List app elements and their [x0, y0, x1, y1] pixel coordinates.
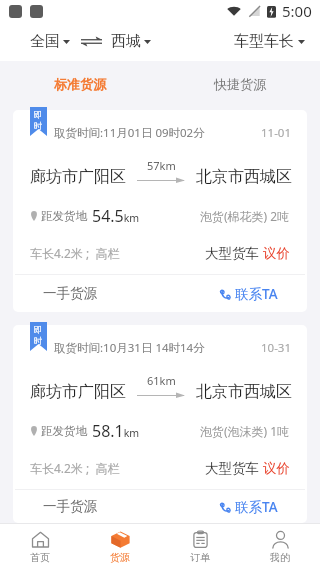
staticText: 联系TA: [235, 498, 278, 516]
staticText: 议价: [263, 460, 290, 477]
staticText: 54.5km: [92, 205, 140, 227]
button[interactable]: 快捷货源: [160, 61, 320, 107]
button[interactable]: 订单: [160, 524, 240, 570]
staticText: 即: [34, 325, 43, 336]
button[interactable]: Swap origin and destination: [81, 36, 102, 47]
staticText: 取货时间:10月31日 14时14分: [54, 340, 205, 356]
staticText: 即: [34, 110, 43, 121]
staticText: 车长4.2米 ; 高栏: [30, 460, 120, 476]
staticText: 时: [34, 121, 43, 132]
staticText: 取货时间:11月01日 09时02分: [54, 125, 205, 141]
staticText: 北京市西城区: [196, 382, 292, 402]
button[interactable]: 我的: [240, 524, 320, 570]
staticText: 西城: [111, 32, 141, 51]
staticText: 距发货地: [41, 424, 87, 438]
staticText: 订单: [190, 551, 210, 564]
staticText: 北京市西城区: [196, 167, 292, 187]
staticText: 议价: [263, 245, 290, 262]
staticText: 11-01: [261, 125, 292, 141]
staticText: 联系TA: [235, 285, 278, 303]
staticText: 我的: [270, 551, 290, 564]
button[interactable]: 货源: [80, 524, 160, 570]
staticText: 廊坊市广阳区: [30, 167, 126, 187]
staticText: 快捷货源: [214, 76, 266, 92]
staticText: 泡货(棉花类) 2吨: [200, 208, 290, 224]
button[interactable]: 联系TA: [220, 498, 278, 516]
staticText: 廊坊市广阳区: [30, 382, 126, 402]
staticText: 车型车长: [234, 32, 294, 51]
staticText: 5:00: [282, 1, 312, 21]
staticText: 大型货车: [205, 459, 263, 477]
button[interactable]: 标准货源: [0, 61, 160, 107]
button[interactable]: 首页: [0, 524, 80, 570]
staticText: 车长4.2米 ; 高栏: [30, 245, 120, 261]
staticText: 一手货源: [43, 498, 97, 515]
staticText: 全国: [30, 32, 60, 51]
staticText: 泡货(泡沫类) 1吨: [200, 423, 290, 439]
button[interactable]: 全国: [30, 32, 70, 51]
button[interactable]: 西城: [111, 32, 151, 51]
staticText: 61km: [147, 373, 176, 388]
staticText: 时: [34, 336, 43, 347]
staticText: 距发货地: [41, 209, 87, 223]
staticText: 10-31: [261, 340, 292, 356]
button[interactable]: 取货时间:11月01日 09时02分: [13, 110, 307, 312]
staticText: 大型货车: [205, 244, 263, 262]
button[interactable]: 取货时间:10月31日 14时14分: [13, 325, 307, 523]
button[interactable]: 联系TA: [220, 285, 278, 303]
staticText: 57km: [147, 158, 176, 173]
staticText: 58.1km: [92, 420, 140, 442]
staticText: 首页: [30, 551, 50, 564]
staticText: 标准货源: [54, 76, 106, 92]
staticText: 一手货源: [43, 285, 97, 302]
button[interactable]: 车型车长: [234, 32, 305, 51]
staticText: 货源: [110, 551, 130, 564]
